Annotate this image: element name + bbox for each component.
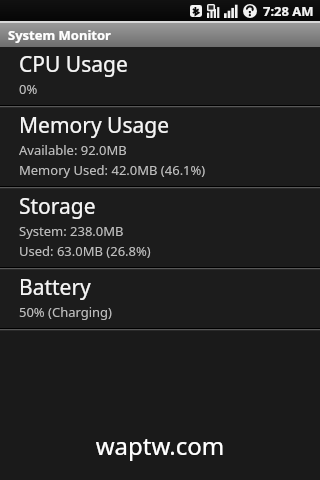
- staticText: 0%: [19, 80, 38, 98]
- other: Data connection: [207, 4, 220, 18]
- staticText: 50% (Charging): [19, 303, 113, 321]
- staticText: Memory Used: 42.0MB (46.1%): [19, 161, 206, 179]
- other: Signal strength: [224, 4, 238, 18]
- button[interactable]: Storage: [0, 189, 320, 267]
- staticText: Used: 63.0MB (26.8%): [19, 242, 151, 260]
- staticText: Memory Usage: [19, 111, 170, 140]
- button[interactable]: Battery: [0, 270, 320, 328]
- staticText: CPU Usage: [19, 50, 128, 79]
- staticText: System Monitor: [8, 26, 111, 44]
- staticText: Available: 92.0MB: [19, 141, 127, 159]
- staticText: System: 238.0MB: [19, 222, 124, 240]
- staticText: Battery: [19, 273, 91, 302]
- button[interactable]: Memory Usage: [0, 108, 320, 186]
- other: Unknown notification: [243, 4, 257, 18]
- staticText: Storage: [19, 192, 96, 221]
- staticText: waptw.com: [0, 429, 320, 462]
- button[interactable]: CPU Usage: [0, 47, 320, 105]
- staticText: 7:28 AM: [263, 2, 314, 20]
- other: Bluetooth: [190, 4, 202, 18]
